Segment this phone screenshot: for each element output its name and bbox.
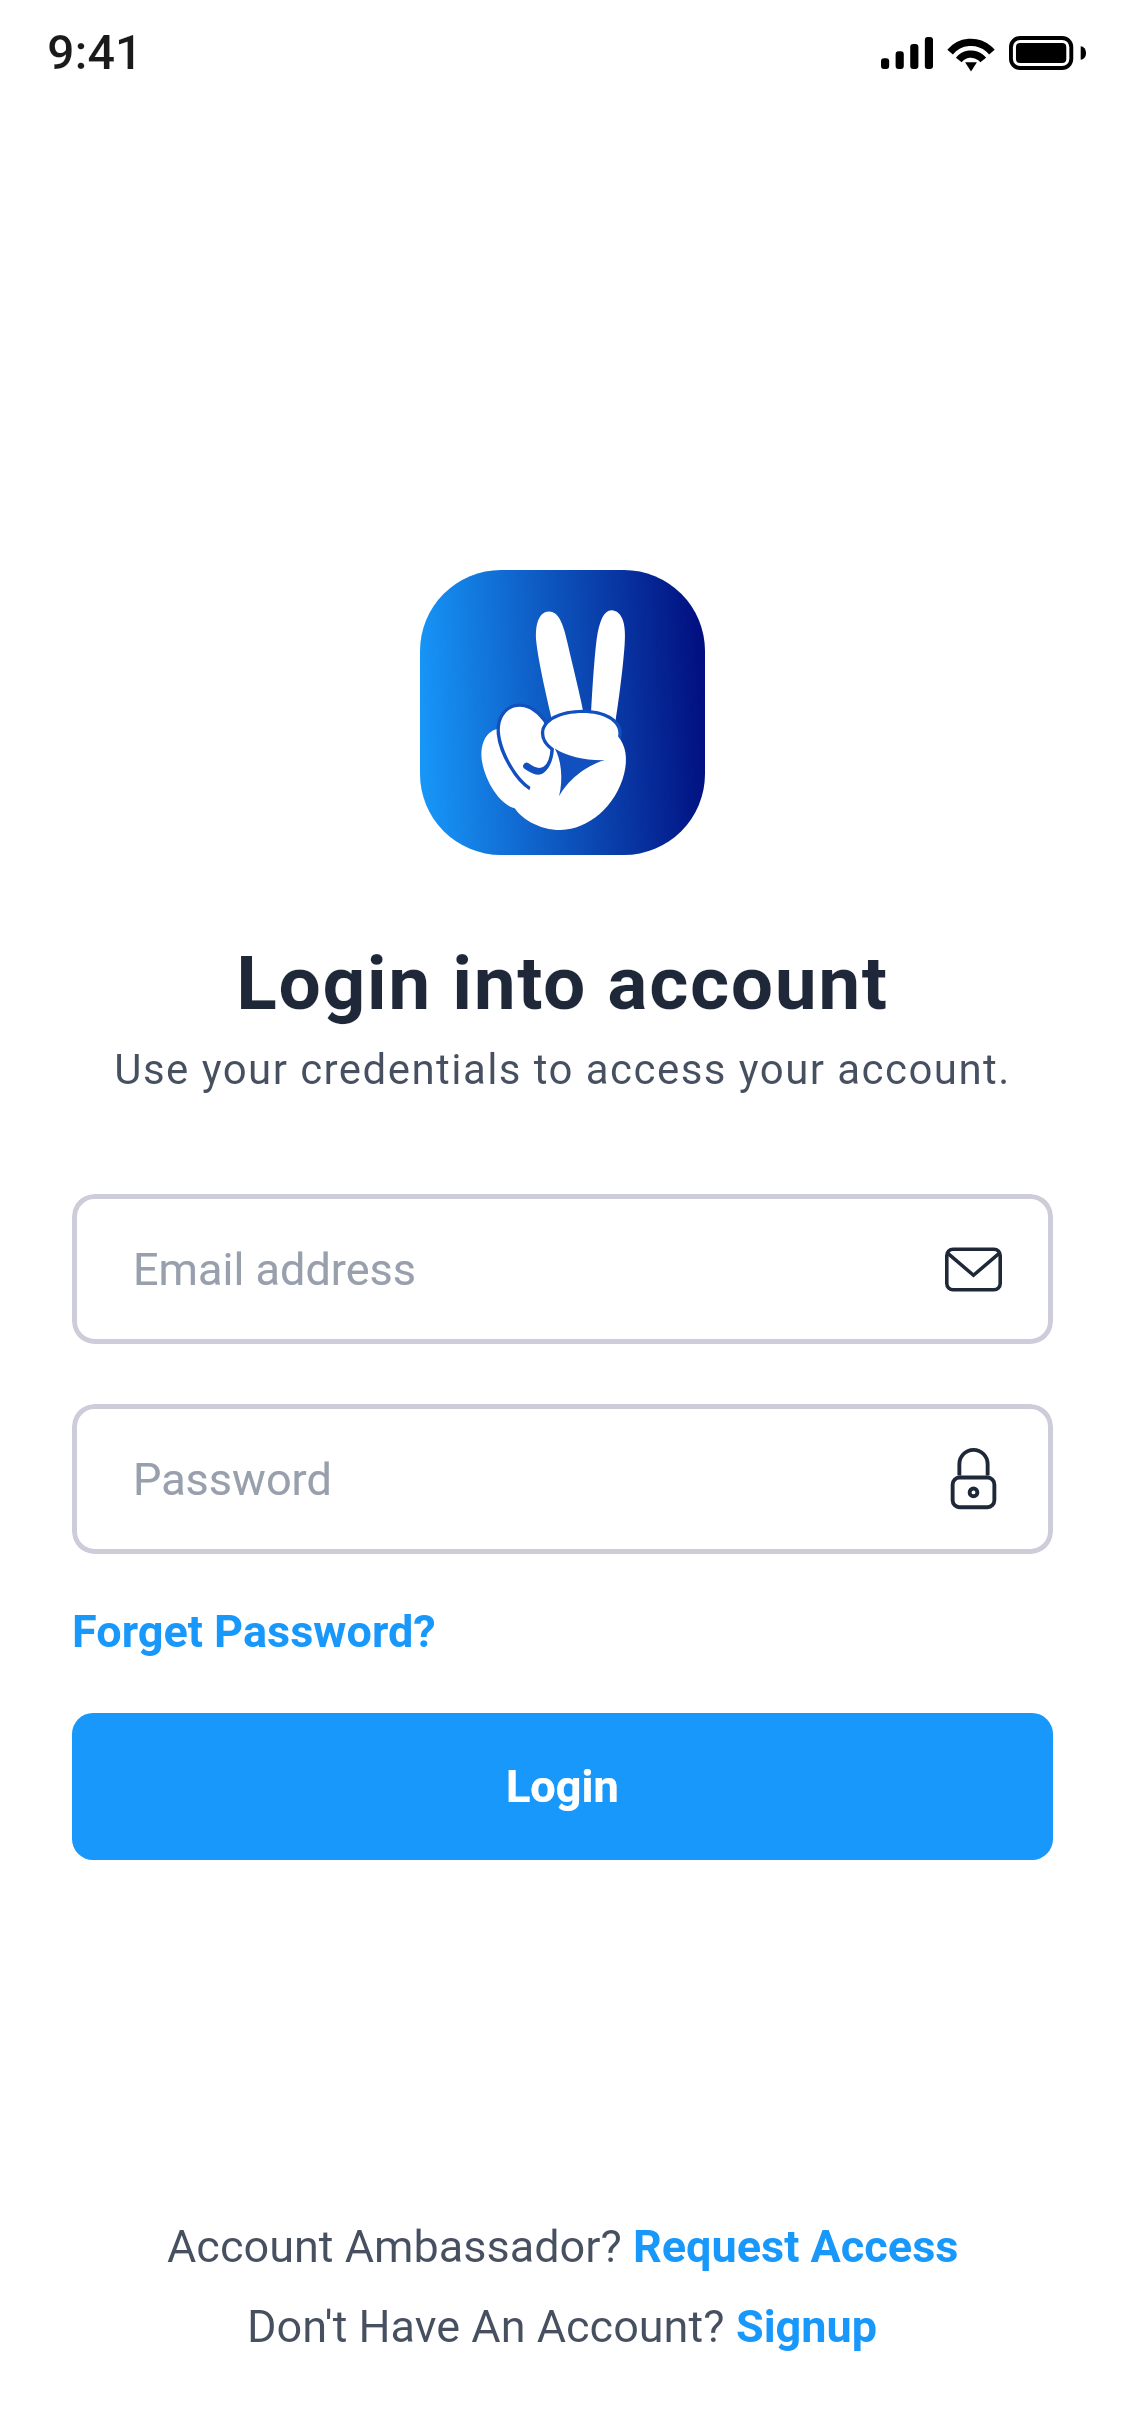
staticText: 9:41 [47, 24, 143, 81]
button[interactable]: Login [72, 1713, 1053, 1860]
other: Password [945, 1451, 1002, 1508]
staticText: Login [506, 1760, 619, 1813]
staticText: Signup [736, 2300, 878, 2353]
staticText: Request Access [633, 2220, 959, 2273]
button[interactable]: Email address [72, 1194, 1053, 1344]
staticText: Use your credentials to access your acco… [0, 1045, 1125, 1094]
staticText: Don't Have An Account? [247, 2300, 736, 2353]
staticText: Account Ambassador? [167, 2220, 633, 2273]
button[interactable]: Account Ambassador? [167, 2220, 959, 2273]
staticText: Forget Password? [72, 1605, 436, 1658]
staticText: Login into account [0, 939, 1125, 1027]
other: Email address [945, 1241, 1002, 1298]
button[interactable]: Password [72, 1404, 1053, 1554]
button[interactable]: Don't Have An Account? [247, 2300, 878, 2353]
staticText: Email address [133, 1243, 416, 1296]
staticText: Password [133, 1453, 332, 1506]
button[interactable]: Forget Password? [72, 1605, 436, 1658]
